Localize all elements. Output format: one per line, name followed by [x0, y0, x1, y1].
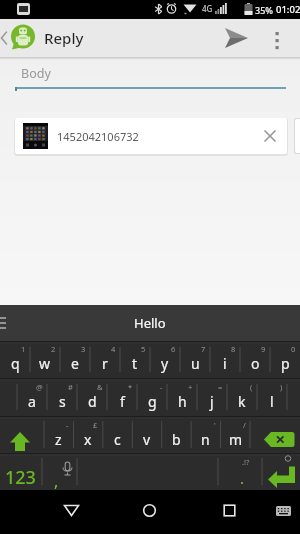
staticText: i: [223, 354, 227, 373]
button[interactable]: [272, 498, 296, 522]
button[interactable]: [56, 495, 87, 526]
staticText: w: [39, 354, 51, 373]
button[interactable]: [134, 495, 165, 526]
staticText: n: [201, 430, 210, 449]
staticText: Hello: [134, 314, 166, 332]
staticText: Reply: [44, 28, 84, 48]
button[interactable]: o: [240, 343, 270, 378]
staticText: *: [128, 382, 133, 392]
button[interactable]: x: [73, 419, 102, 453]
staticText: 8: [231, 344, 236, 354]
button[interactable]: u: [180, 343, 210, 378]
staticText: 1: [21, 344, 26, 354]
staticText: 123: [5, 465, 36, 490]
button[interactable]: Body: [0, 60, 300, 95]
button[interactable]: c: [103, 419, 132, 453]
staticText: y: [161, 354, 169, 373]
button[interactable]: 123: [0, 456, 42, 490]
staticText: @: [36, 382, 43, 392]
staticText: £: [93, 420, 98, 430]
button[interactable]: [0, 419, 44, 453]
button[interactable]: k: [227, 381, 257, 416]
staticText: 6: [171, 344, 176, 354]
button[interactable]: h: [167, 381, 197, 416]
staticText: -: [66, 420, 69, 430]
staticText: 3: [81, 344, 86, 354]
staticText: .: [240, 468, 245, 488]
staticText: .!?: [242, 457, 250, 467]
staticText: j: [210, 392, 214, 411]
button[interactable]: v: [132, 419, 161, 453]
button[interactable]: g: [137, 381, 167, 416]
button[interactable]: Hello: [90, 305, 210, 341]
staticText: s: [59, 392, 66, 411]
staticText: 2: [51, 344, 56, 354]
staticText: v: [143, 430, 151, 449]
staticText: 35%: [255, 4, 273, 16]
staticText: k: [238, 392, 246, 411]
staticText: +: [188, 382, 193, 392]
button[interactable]: n: [191, 419, 220, 453]
button[interactable]: e: [60, 343, 90, 378]
staticText: c: [114, 430, 121, 449]
button[interactable]: [222, 27, 252, 49]
button[interactable]: d: [77, 381, 107, 416]
staticText: u: [191, 354, 200, 373]
button[interactable]: ,: [42, 456, 77, 490]
staticText: 01:02: [276, 3, 300, 16]
staticText: ,: [54, 470, 59, 492]
button[interactable]: j: [197, 381, 227, 416]
staticText: h: [178, 392, 187, 411]
staticText: g: [148, 392, 157, 411]
button[interactable]: p: [270, 343, 300, 378]
button[interactable]: r: [90, 343, 120, 378]
staticText: o: [251, 354, 260, 373]
staticText: Body: [21, 65, 51, 82]
button[interactable]: .!?: [218, 456, 262, 490]
button[interactable]: l: [257, 381, 287, 416]
staticText: 9: [261, 344, 266, 354]
staticText: e: [71, 354, 79, 373]
button[interactable]: z: [44, 419, 73, 453]
button[interactable]: m: [221, 419, 250, 453]
staticText: f: [120, 392, 125, 411]
button[interactable]: b: [162, 419, 191, 453]
staticText: (: [250, 382, 253, 392]
staticText: b: [172, 430, 181, 449]
staticText: z: [55, 430, 62, 449]
staticText: t: [132, 354, 138, 373]
staticText: /: [243, 420, 246, 430]
button[interactable]: s: [47, 381, 77, 416]
staticText: a: [28, 392, 36, 411]
staticText: d: [88, 392, 97, 411]
staticText: l: [270, 392, 274, 411]
button[interactable]: [10, 24, 37, 51]
staticText: m: [229, 430, 243, 449]
button[interactable]: a: [17, 381, 47, 416]
button[interactable]: [268, 22, 286, 54]
button[interactable]: w: [30, 343, 60, 378]
button[interactable]: [261, 127, 279, 145]
button[interactable]: [214, 495, 245, 526]
button[interactable]: t: [120, 343, 150, 378]
staticText: ': [214, 420, 216, 430]
staticText: 7: [201, 344, 206, 354]
staticText: &: [97, 382, 103, 392]
staticText: r: [102, 354, 108, 373]
staticText: =: [218, 382, 223, 392]
button[interactable]: [250, 419, 300, 453]
button[interactable]: [262, 456, 300, 490]
staticText: -: [160, 382, 163, 392]
button[interactable]: i: [210, 343, 240, 378]
staticText: 0: [291, 344, 296, 354]
staticText: ): [280, 382, 283, 392]
staticText: q: [11, 354, 20, 373]
staticText: 1452042106732: [57, 129, 139, 144]
button[interactable]: f: [107, 381, 137, 416]
staticText: 4: [111, 344, 116, 354]
button[interactable]: y: [150, 343, 180, 378]
button[interactable]: 1452042106732: [15, 118, 287, 154]
staticText: 5: [141, 344, 146, 354]
button[interactable]: q: [0, 343, 30, 378]
